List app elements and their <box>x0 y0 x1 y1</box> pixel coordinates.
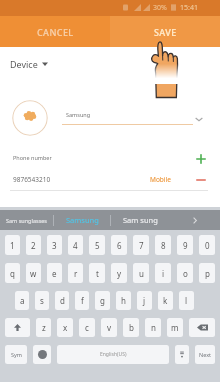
staticText: w <box>30 268 37 279</box>
button[interactable]: 0 <box>199 235 215 255</box>
button[interactable]: e <box>47 263 62 283</box>
staticText: 9 <box>183 240 188 251</box>
staticText: 8 <box>161 240 166 251</box>
button[interactable]: u <box>133 263 149 283</box>
staticText: e <box>52 268 57 279</box>
staticText: n <box>151 322 156 333</box>
staticText: 7 <box>139 240 144 251</box>
staticText: 6 <box>117 240 122 251</box>
button[interactable]: r <box>68 263 83 283</box>
button[interactable]: More suggestions <box>169 210 220 230</box>
button[interactable]: x <box>57 318 73 337</box>
staticText: Phone number <box>13 154 52 161</box>
button[interactable]: Samsung <box>54 210 110 230</box>
button[interactable]: Device <box>10 58 48 70</box>
button[interactable]: m <box>167 318 183 337</box>
staticText: v <box>107 322 112 333</box>
staticText: q <box>10 268 15 279</box>
staticText: Sam sung <box>123 215 158 225</box>
button[interactable]: 6 <box>111 235 127 255</box>
staticText: s <box>40 295 44 306</box>
button[interactable]: j <box>137 291 152 310</box>
button[interactable]: Sym <box>5 345 27 364</box>
button[interactable]: t <box>89 263 105 283</box>
button[interactable]: v <box>101 318 117 337</box>
staticText: 1 <box>10 240 15 251</box>
staticText: f <box>81 295 84 306</box>
button[interactable]: y <box>111 263 127 283</box>
staticText: Samsung <box>66 215 99 225</box>
staticText: a <box>20 295 25 306</box>
staticText: k <box>163 295 168 306</box>
button[interactable]: Add phone number <box>194 152 208 166</box>
staticText: 0 <box>205 240 210 251</box>
button[interactable]: q <box>5 263 20 283</box>
button[interactable]: 1 <box>5 235 20 255</box>
button[interactable] <box>175 345 189 364</box>
button[interactable]: b <box>123 318 139 337</box>
button[interactable]: i <box>155 263 171 283</box>
button[interactable]: a <box>15 291 29 310</box>
staticText: r <box>74 268 78 279</box>
button[interactable]: p <box>199 263 215 283</box>
staticText: c <box>85 322 89 333</box>
button[interactable]: l <box>179 291 194 310</box>
staticText: j <box>143 295 146 306</box>
staticText: i <box>162 268 165 279</box>
button[interactable]: f <box>75 291 89 310</box>
button[interactable]: z <box>36 318 51 337</box>
button[interactable]: 7 <box>133 235 149 255</box>
button[interactable]: English(US) <box>57 345 169 364</box>
staticText: Next <box>199 351 212 358</box>
staticText: 3 <box>52 240 57 251</box>
button[interactable]: 8 <box>155 235 171 255</box>
staticText: d <box>60 295 65 306</box>
staticText: g <box>100 295 105 306</box>
button[interactable]: 3 <box>47 235 62 255</box>
staticText: h <box>121 295 126 306</box>
button[interactable]: Sam sung <box>111 210 169 230</box>
staticText: English(US) <box>100 351 127 358</box>
staticText: Sym <box>11 351 22 358</box>
button[interactable]: 2 <box>26 235 41 255</box>
button[interactable]: Emoji <box>33 345 51 364</box>
staticText: Device <box>10 58 38 70</box>
staticText: x <box>63 322 68 333</box>
button[interactable]: 4 <box>68 235 83 255</box>
staticText: y <box>117 268 122 279</box>
button[interactable]: s <box>35 291 49 310</box>
button[interactable]: CANCEL <box>0 16 110 47</box>
button[interactable]: 5 <box>89 235 105 255</box>
button[interactable]: Shift <box>5 318 30 337</box>
button[interactable]: c <box>79 318 95 337</box>
button[interactable]: Remove phone number <box>194 173 208 187</box>
button[interactable]: Sam sunglasses <box>0 210 53 230</box>
button[interactable]: k <box>158 291 173 310</box>
staticText: SAVE <box>154 26 177 38</box>
button[interactable]: Contact photo <box>12 100 48 136</box>
button[interactable]: 9 <box>177 235 193 255</box>
button[interactable]: w <box>26 263 41 283</box>
button[interactable]: g <box>95 291 110 310</box>
staticText: u <box>139 268 144 279</box>
button[interactable]: Backspace <box>189 318 215 337</box>
staticText: 30% <box>153 3 167 13</box>
staticText: b <box>129 322 134 333</box>
button[interactable]: SAVE <box>110 16 220 47</box>
button[interactable]: o <box>177 263 193 283</box>
button[interactable]: Expand name <box>193 113 205 125</box>
staticText: 4 <box>73 240 78 251</box>
staticText: o <box>183 268 188 279</box>
staticText: Sam sunglasses <box>6 217 48 224</box>
staticText: z <box>42 322 46 333</box>
staticText: 5 <box>95 240 100 251</box>
staticText: CANCEL <box>37 26 74 38</box>
button[interactable]: h <box>116 291 131 310</box>
button[interactable]: n <box>145 318 161 337</box>
button[interactable]: Next <box>195 345 215 364</box>
staticText: t <box>96 268 99 279</box>
staticText: Mobile <box>150 175 171 184</box>
staticText: Samsung <box>66 111 91 118</box>
button[interactable]: d <box>55 291 69 310</box>
staticText: l <box>185 295 188 306</box>
